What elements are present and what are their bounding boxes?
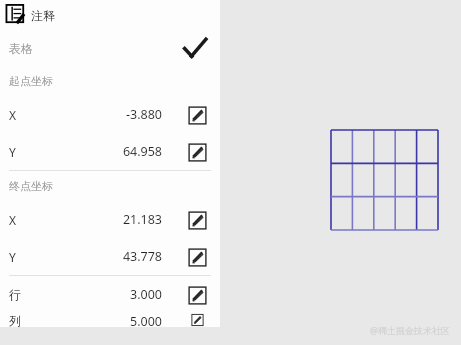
button[interactable]: Edit X (184, 207, 210, 233)
staticText: @稀土掘金技术社区 (370, 324, 451, 336)
button[interactable]: Edit 行 (184, 282, 210, 308)
button[interactable]: Edit 列 (184, 313, 210, 327)
staticText: 行 (9, 287, 61, 302)
button[interactable]: Edit X (184, 102, 210, 128)
staticText: 3.000 (61, 286, 162, 303)
button[interactable]: X (0, 201, 220, 238)
button[interactable]: Y (0, 133, 220, 170)
button[interactable]: Edit Y (184, 139, 210, 165)
staticText: 21.183 (61, 211, 162, 228)
staticText: 64.958 (61, 143, 162, 160)
staticText: Y (9, 249, 61, 265)
staticText: X (9, 212, 61, 228)
staticText: 表格 (9, 41, 33, 56)
staticText: 5.000 (61, 313, 162, 327)
button[interactable]: 列 (0, 313, 220, 327)
staticText: -3.880 (61, 106, 162, 123)
staticText: 起点坐标 (9, 74, 53, 88)
button[interactable]: 行 (0, 276, 220, 313)
staticText: Y (9, 144, 61, 160)
button[interactable]: X (0, 96, 220, 133)
staticText: 终点坐标 (9, 179, 53, 193)
button[interactable]: Y (0, 238, 220, 275)
staticText: 注释 (31, 8, 55, 23)
staticText: X (9, 107, 61, 123)
staticText: 43.778 (61, 248, 162, 265)
button[interactable]: 表格 (0, 30, 220, 66)
staticText: 列 (9, 313, 61, 327)
button[interactable]: Edit Y (184, 244, 210, 270)
button[interactable]: 注释 (0, 0, 220, 30)
